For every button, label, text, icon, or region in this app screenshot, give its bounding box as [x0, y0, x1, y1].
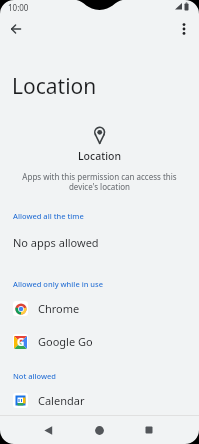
- staticText: Location: [12, 72, 97, 101]
- button[interactable]: No apps allowed: [0, 231, 199, 253]
- button[interactable]: [85, 416, 113, 444]
- staticText: No apps allowed: [13, 235, 99, 250]
- button[interactable]: [135, 416, 163, 444]
- button[interactable]: [6, 19, 26, 39]
- button[interactable]: [34, 416, 62, 444]
- staticText: Allowed all the time: [13, 211, 84, 221]
- staticText: Google Go: [38, 334, 93, 349]
- staticText: Chrome: [38, 301, 80, 316]
- staticText: Not allowed: [13, 371, 57, 381]
- button[interactable]: Chrome: [0, 297, 199, 319]
- staticText: 10:00: [8, 2, 29, 13]
- button[interactable]: [174, 19, 194, 39]
- staticText: Calendar: [38, 393, 85, 408]
- button[interactable]: Calendar: [0, 389, 199, 411]
- staticText: G: [17, 335, 25, 349]
- staticText: Allowed only while in use: [13, 279, 103, 289]
- staticText: Location: [0, 149, 199, 163]
- staticText: Apps with this permission can access thi…: [0, 171, 199, 192]
- button[interactable]: G: [0, 330, 199, 352]
